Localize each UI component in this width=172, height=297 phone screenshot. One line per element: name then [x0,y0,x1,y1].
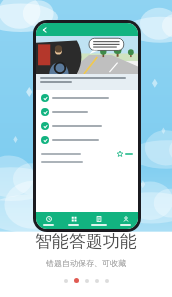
button[interactable] [41,122,133,130]
button[interactable] [41,108,133,116]
button[interactable]: Practice [61,212,86,229]
button[interactable] [74,278,79,283]
button[interactable] [117,151,133,157]
button[interactable] [64,279,68,283]
button[interactable]: Home [36,212,61,229]
button[interactable] [41,136,133,144]
button[interactable] [41,94,133,102]
staticText: 错题自动保存、可收藏 [46,258,126,268]
button[interactable]: Exam [86,212,112,229]
staticText: 智能答题功能 [35,231,137,252]
button[interactable] [85,279,89,283]
button[interactable] [95,279,99,283]
button[interactable] [105,279,109,283]
button[interactable]: Profile [112,212,138,229]
button[interactable]: Back [39,25,49,35]
